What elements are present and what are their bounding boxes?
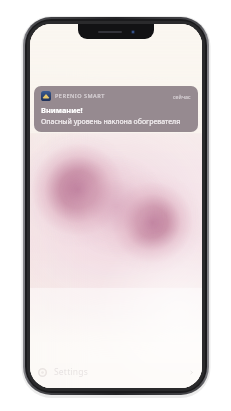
button[interactable]: PERENIO SMART: [34, 86, 198, 132]
staticText: PERENIO SMART: [55, 92, 105, 100]
staticText: сейчас: [173, 93, 191, 100]
button[interactable]: Settings: [30, 362, 202, 382]
staticText: Внимание!: [41, 105, 83, 115]
staticText: Settings: [54, 366, 88, 378]
staticText: Опасный уровень наклона обогревателя: [41, 117, 181, 127]
other: Settings: [38, 368, 47, 377]
